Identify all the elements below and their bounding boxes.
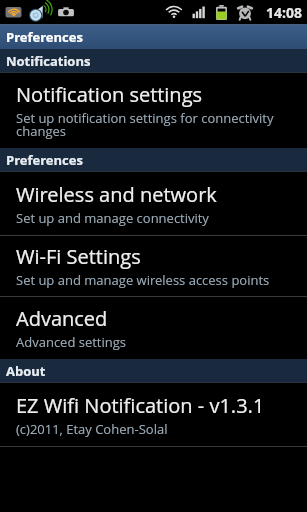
staticText: Notification settings — [16, 81, 203, 108]
staticText: Set up and manage wireless access points — [16, 271, 270, 289]
staticText: 14:08 — [266, 3, 302, 22]
staticText: Set up notification settings for connect… — [16, 109, 291, 140]
staticText: EZ Wifi Notification - v1.3.1 — [16, 392, 265, 419]
staticText: Notifications — [6, 52, 91, 70]
staticText: About — [6, 362, 46, 380]
button[interactable]: Wi-Fi Settings — [0, 236, 307, 296]
button[interactable]: Advanced — [0, 297, 307, 359]
staticText: Wireless and network — [16, 181, 217, 208]
button[interactable]: Wireless and network — [0, 172, 307, 235]
staticText: Wi-Fi Settings — [16, 243, 141, 270]
staticText: (c)2011, Etay Cohen-Solal — [16, 420, 168, 438]
staticText: Advanced settings — [16, 333, 127, 351]
button[interactable]: EZ Wifi Notification - v1.3.1 — [0, 383, 307, 446]
staticText: Preferences — [6, 151, 83, 169]
button[interactable]: Notification settings — [0, 73, 307, 148]
staticText: Preferences — [6, 28, 83, 46]
staticText: Advanced — [16, 305, 108, 332]
staticText: Set up and manage connectivity — [16, 209, 209, 227]
